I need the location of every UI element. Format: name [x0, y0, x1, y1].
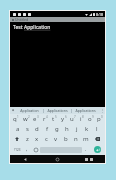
staticText: Applications — [75, 108, 96, 113]
button[interactable]: Back — [10, 155, 41, 163]
staticText: s — [26, 125, 29, 133]
button[interactable]: p — [95, 114, 104, 124]
staticText: Untitled — [15, 17, 29, 22]
button[interactable]: Backspace — [91, 134, 104, 144]
button[interactable]: Recent apps — [73, 155, 105, 163]
staticText: p — [97, 115, 101, 123]
button[interactable]: k — [82, 124, 92, 134]
button[interactable]: . — [82, 145, 90, 154]
button[interactable]: n — [71, 134, 81, 144]
staticText: l — [96, 125, 98, 133]
staticText: n — [74, 135, 78, 143]
staticText: 6 — [65, 115, 67, 119]
staticText: b — [64, 135, 68, 143]
staticText: q — [13, 115, 17, 123]
staticText: y — [61, 115, 65, 123]
staticText: ⋮ — [100, 108, 104, 113]
staticText: 5 — [55, 115, 57, 119]
button[interactable]: e — [31, 114, 41, 124]
button[interactable]: q — [11, 114, 21, 124]
button[interactable]: Emoji — [31, 145, 40, 154]
staticText: Test — [13, 24, 24, 31]
staticText: ● — [12, 109, 15, 112]
staticText: w — [23, 115, 28, 123]
staticText: 0 — [101, 115, 103, 119]
staticText: j — [76, 125, 78, 133]
staticText: i — [80, 115, 82, 123]
button[interactable]: a — [13, 124, 22, 134]
button[interactable]: l — [92, 124, 102, 134]
staticText: 1 — [17, 115, 19, 119]
staticText: f — [46, 125, 49, 133]
button[interactable]: o — [86, 114, 95, 124]
button[interactable]: ?123 — [11, 145, 23, 154]
button[interactable]: b — [61, 134, 71, 144]
button[interactable]: f — [42, 124, 52, 134]
staticText: 8:18 — [96, 12, 103, 17]
staticText: m — [83, 135, 89, 143]
staticText: g — [55, 125, 59, 133]
button[interactable]: u — [68, 114, 77, 124]
staticText: 3 — [37, 115, 39, 119]
staticText: 9 — [92, 115, 94, 119]
staticText: Applications — [47, 108, 68, 113]
staticText: Application — [20, 108, 39, 113]
staticText: 4 — [46, 115, 48, 119]
button[interactable]: g — [52, 124, 62, 134]
staticText: u — [70, 115, 74, 123]
staticText: 2 — [28, 115, 30, 119]
staticText: z — [26, 135, 29, 143]
staticText: o — [88, 115, 92, 123]
button[interactable]: m — [81, 134, 91, 144]
button[interactable]: Applications — [72, 107, 99, 114]
staticText: 7 — [74, 115, 76, 119]
staticText: x — [35, 135, 39, 143]
button[interactable]: d — [32, 124, 42, 134]
staticText: Application — [24, 24, 51, 31]
button[interactable]: w — [21, 114, 31, 124]
staticText: a — [16, 125, 20, 133]
button[interactable]: Test — [13, 24, 105, 31]
button[interactable]: t — [50, 114, 59, 124]
staticText: k — [85, 125, 89, 133]
staticText: 8 — [82, 115, 84, 119]
button[interactable]: Voice input — [10, 107, 16, 114]
staticText: c — [45, 135, 48, 143]
button[interactable]: j — [72, 124, 82, 134]
button[interactable]: y — [59, 114, 68, 124]
button[interactable]: s — [22, 124, 32, 134]
button[interactable]: Home — [41, 155, 73, 163]
button[interactable]: Shift — [11, 134, 23, 144]
button[interactable]: More suggestions — [99, 107, 105, 114]
staticText: h — [65, 125, 69, 133]
button[interactable]: z — [23, 134, 32, 144]
button[interactable]: , — [23, 145, 31, 154]
staticText: ?123 — [14, 148, 21, 152]
button[interactable]: x — [32, 134, 41, 144]
staticText: v — [54, 135, 58, 143]
staticText: t — [52, 115, 55, 123]
button[interactable]: i — [77, 114, 86, 124]
button[interactable]: r — [41, 114, 50, 124]
button[interactable]: Application — [16, 107, 43, 114]
button[interactable]: h — [62, 124, 72, 134]
staticText: r — [43, 115, 46, 123]
button[interactable]: c — [41, 134, 51, 144]
button[interactable]: Enter — [94, 146, 101, 153]
staticText: . — [85, 146, 87, 153]
button[interactable]: Untitled — [10, 17, 105, 22]
staticText: d — [35, 125, 39, 133]
staticText: e — [33, 115, 37, 123]
button[interactable]: Applications — [44, 107, 71, 114]
button[interactable]: v — [51, 134, 61, 144]
staticText: , — [26, 146, 28, 153]
